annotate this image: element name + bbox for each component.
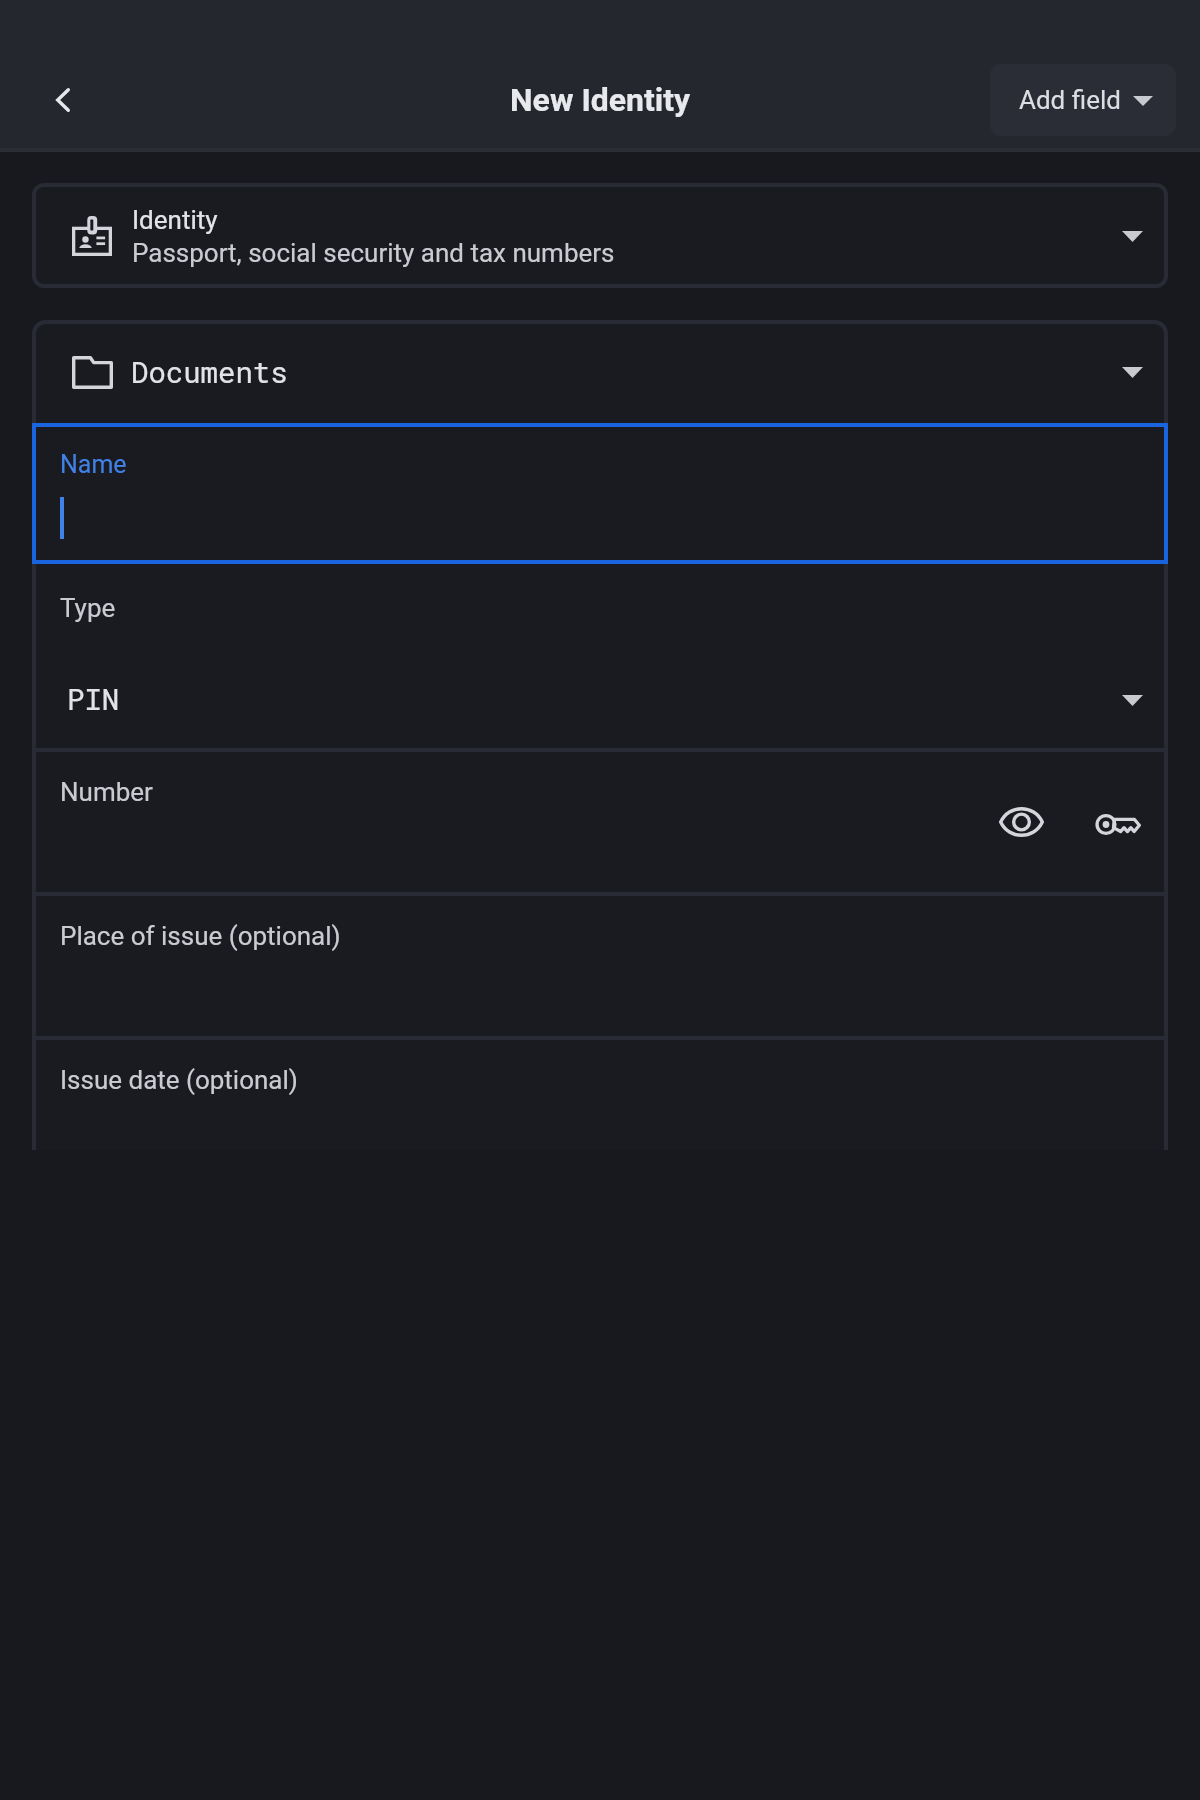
staticText: PIN: [67, 680, 120, 718]
button[interactable]: Generate number: [1084, 790, 1152, 858]
button[interactable]: Add field: [990, 64, 1176, 136]
button[interactable]: Type: [32, 564, 1168, 748]
button[interactable]: Issue date (optional): [32, 1040, 1168, 1150]
staticText: New Identity: [510, 81, 691, 119]
staticText: Number: [60, 777, 153, 807]
staticText: Documents: [131, 353, 288, 391]
button[interactable]: Name: [32, 423, 1168, 564]
button[interactable]: Identity: [32, 183, 1168, 288]
staticText: Passport, social security and tax number…: [132, 238, 615, 268]
staticText: Name: [60, 450, 127, 479]
button[interactable]: Show number: [987, 788, 1055, 856]
staticText: Type: [60, 593, 116, 623]
staticText: Add field: [1019, 85, 1121, 115]
button[interactable]: Back: [15, 52, 111, 148]
staticText: Issue date (optional): [60, 1065, 298, 1095]
button[interactable]: Number: [32, 752, 1168, 892]
staticText: Identity: [132, 205, 218, 235]
staticText: Place of issue (optional): [60, 921, 341, 951]
button[interactable]: Documents: [32, 320, 1168, 423]
button[interactable]: Place of issue (optional): [32, 896, 1168, 1036]
